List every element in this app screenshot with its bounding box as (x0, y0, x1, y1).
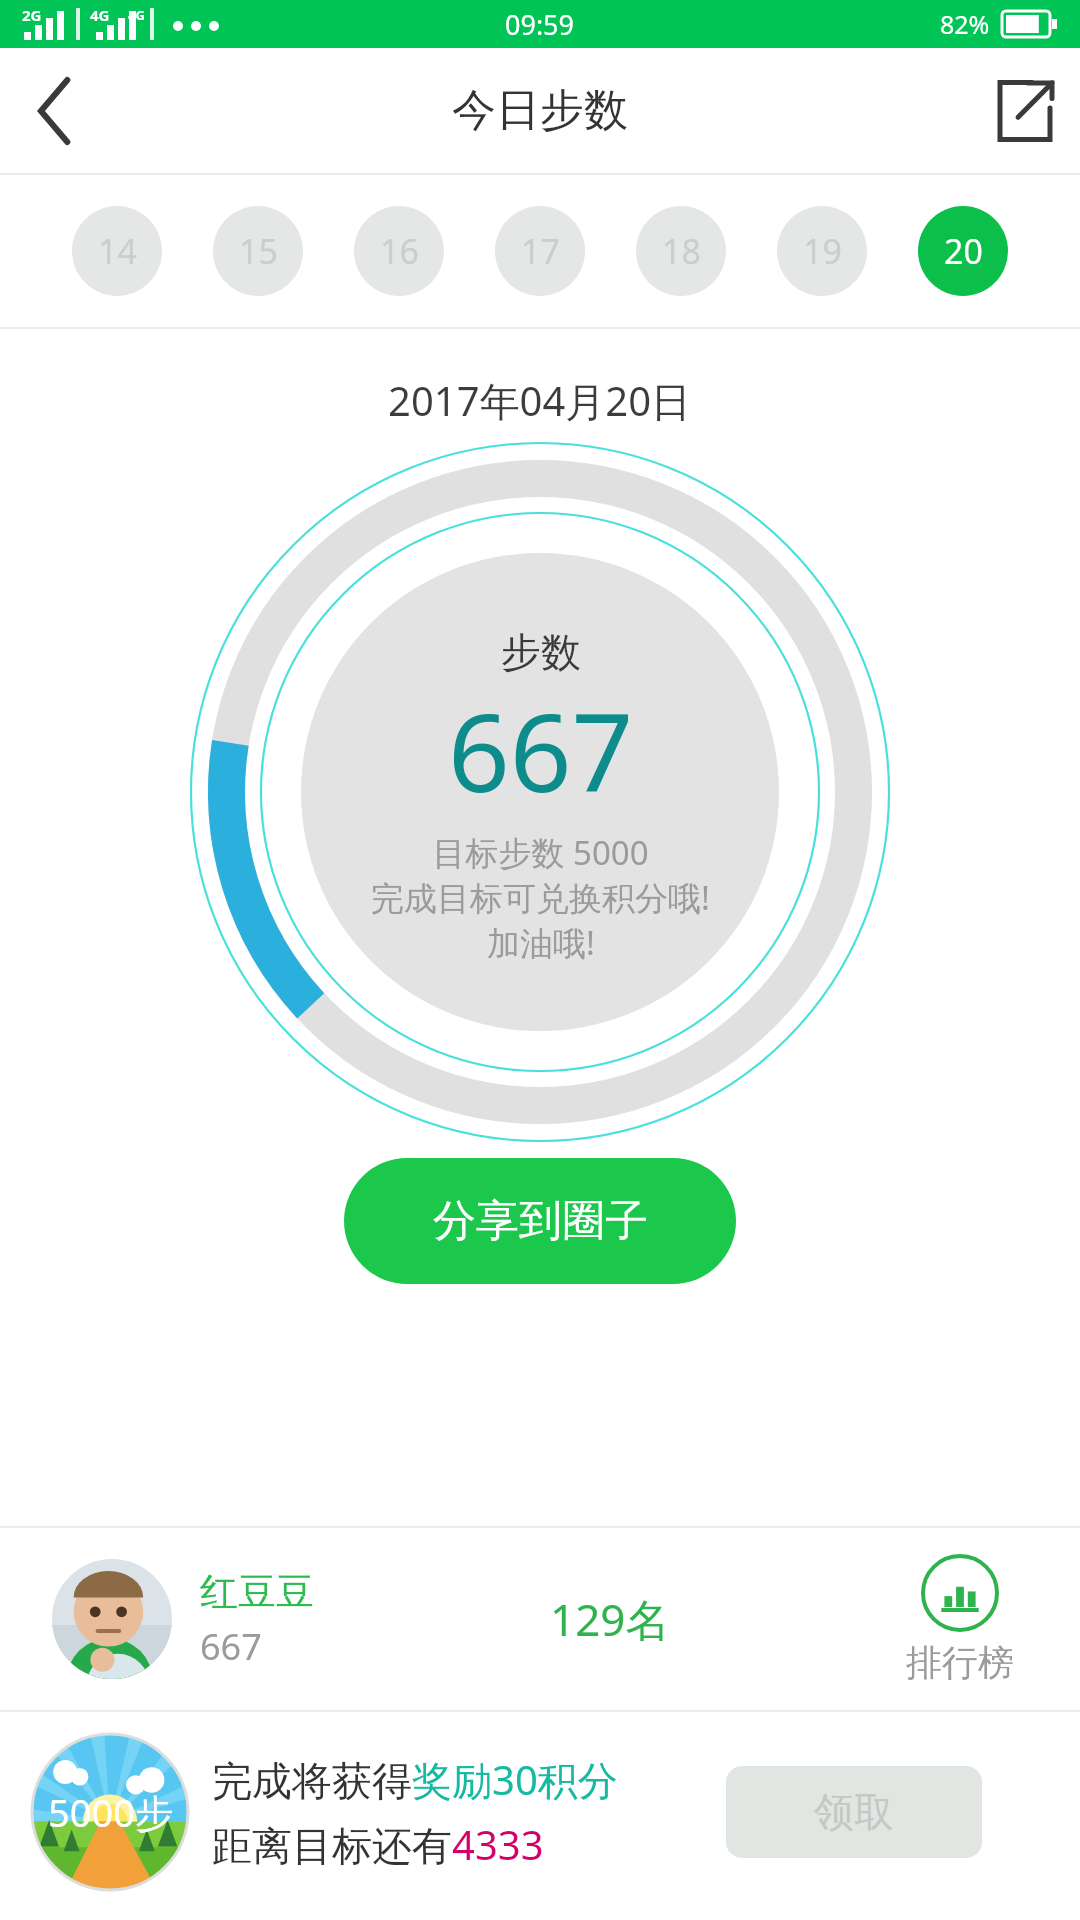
staticText: 15 (239, 228, 278, 274)
staticText: 领取 (814, 1787, 894, 1837)
staticText: 加油哦! (487, 920, 595, 965)
staticText: 17 (521, 228, 560, 274)
button[interactable]: Share (970, 56, 1080, 166)
staticText: 667 (200, 1622, 262, 1671)
button[interactable]: 领取 (726, 1766, 982, 1858)
staticText: 20 (944, 228, 983, 274)
staticText: 完成目标可兑换积分哦! (371, 875, 710, 920)
staticText: 82% (940, 7, 990, 41)
staticText: 129名 (550, 1589, 670, 1649)
staticText: 排行榜 (906, 1640, 1014, 1685)
staticText: 2G (22, 5, 42, 25)
staticText: 红豆豆 (200, 1568, 314, 1616)
button[interactable]: 19 (777, 206, 867, 296)
staticText: 分享到圈子 (433, 1194, 648, 1248)
button[interactable]: 15 (213, 206, 303, 296)
button[interactable]: 18 (636, 206, 726, 296)
staticText: 4G (90, 5, 110, 25)
button[interactable]: 红豆豆 (0, 1528, 1080, 1710)
staticText: 完成将获得奖励30积分 (212, 1752, 618, 1807)
staticText: 4G (128, 6, 145, 24)
staticText: 目标步数 5000 (432, 830, 649, 875)
button[interactable]: 20 (918, 206, 1008, 296)
staticText: 今日步数 (452, 83, 628, 138)
button[interactable]: 16 (354, 206, 444, 296)
button[interactable]: 14 (72, 206, 162, 296)
staticText: 09:59 (505, 6, 575, 43)
staticText: 19 (803, 228, 842, 274)
staticText: 18 (662, 228, 701, 274)
staticText: 667 (448, 677, 634, 824)
staticText: 步数 (501, 627, 581, 677)
staticText: 2017年04月20日 (388, 373, 692, 428)
staticText: 14 (98, 228, 137, 274)
staticText: 5000步 (48, 1786, 173, 1838)
button[interactable]: 分享到圈子 (344, 1158, 736, 1284)
button[interactable]: 17 (495, 206, 585, 296)
staticText: 16 (380, 228, 419, 274)
staticText: 距离目标还有4333 (212, 1817, 544, 1872)
button[interactable]: Back (0, 56, 110, 166)
button[interactable]: 排行榜 (906, 1554, 1014, 1685)
